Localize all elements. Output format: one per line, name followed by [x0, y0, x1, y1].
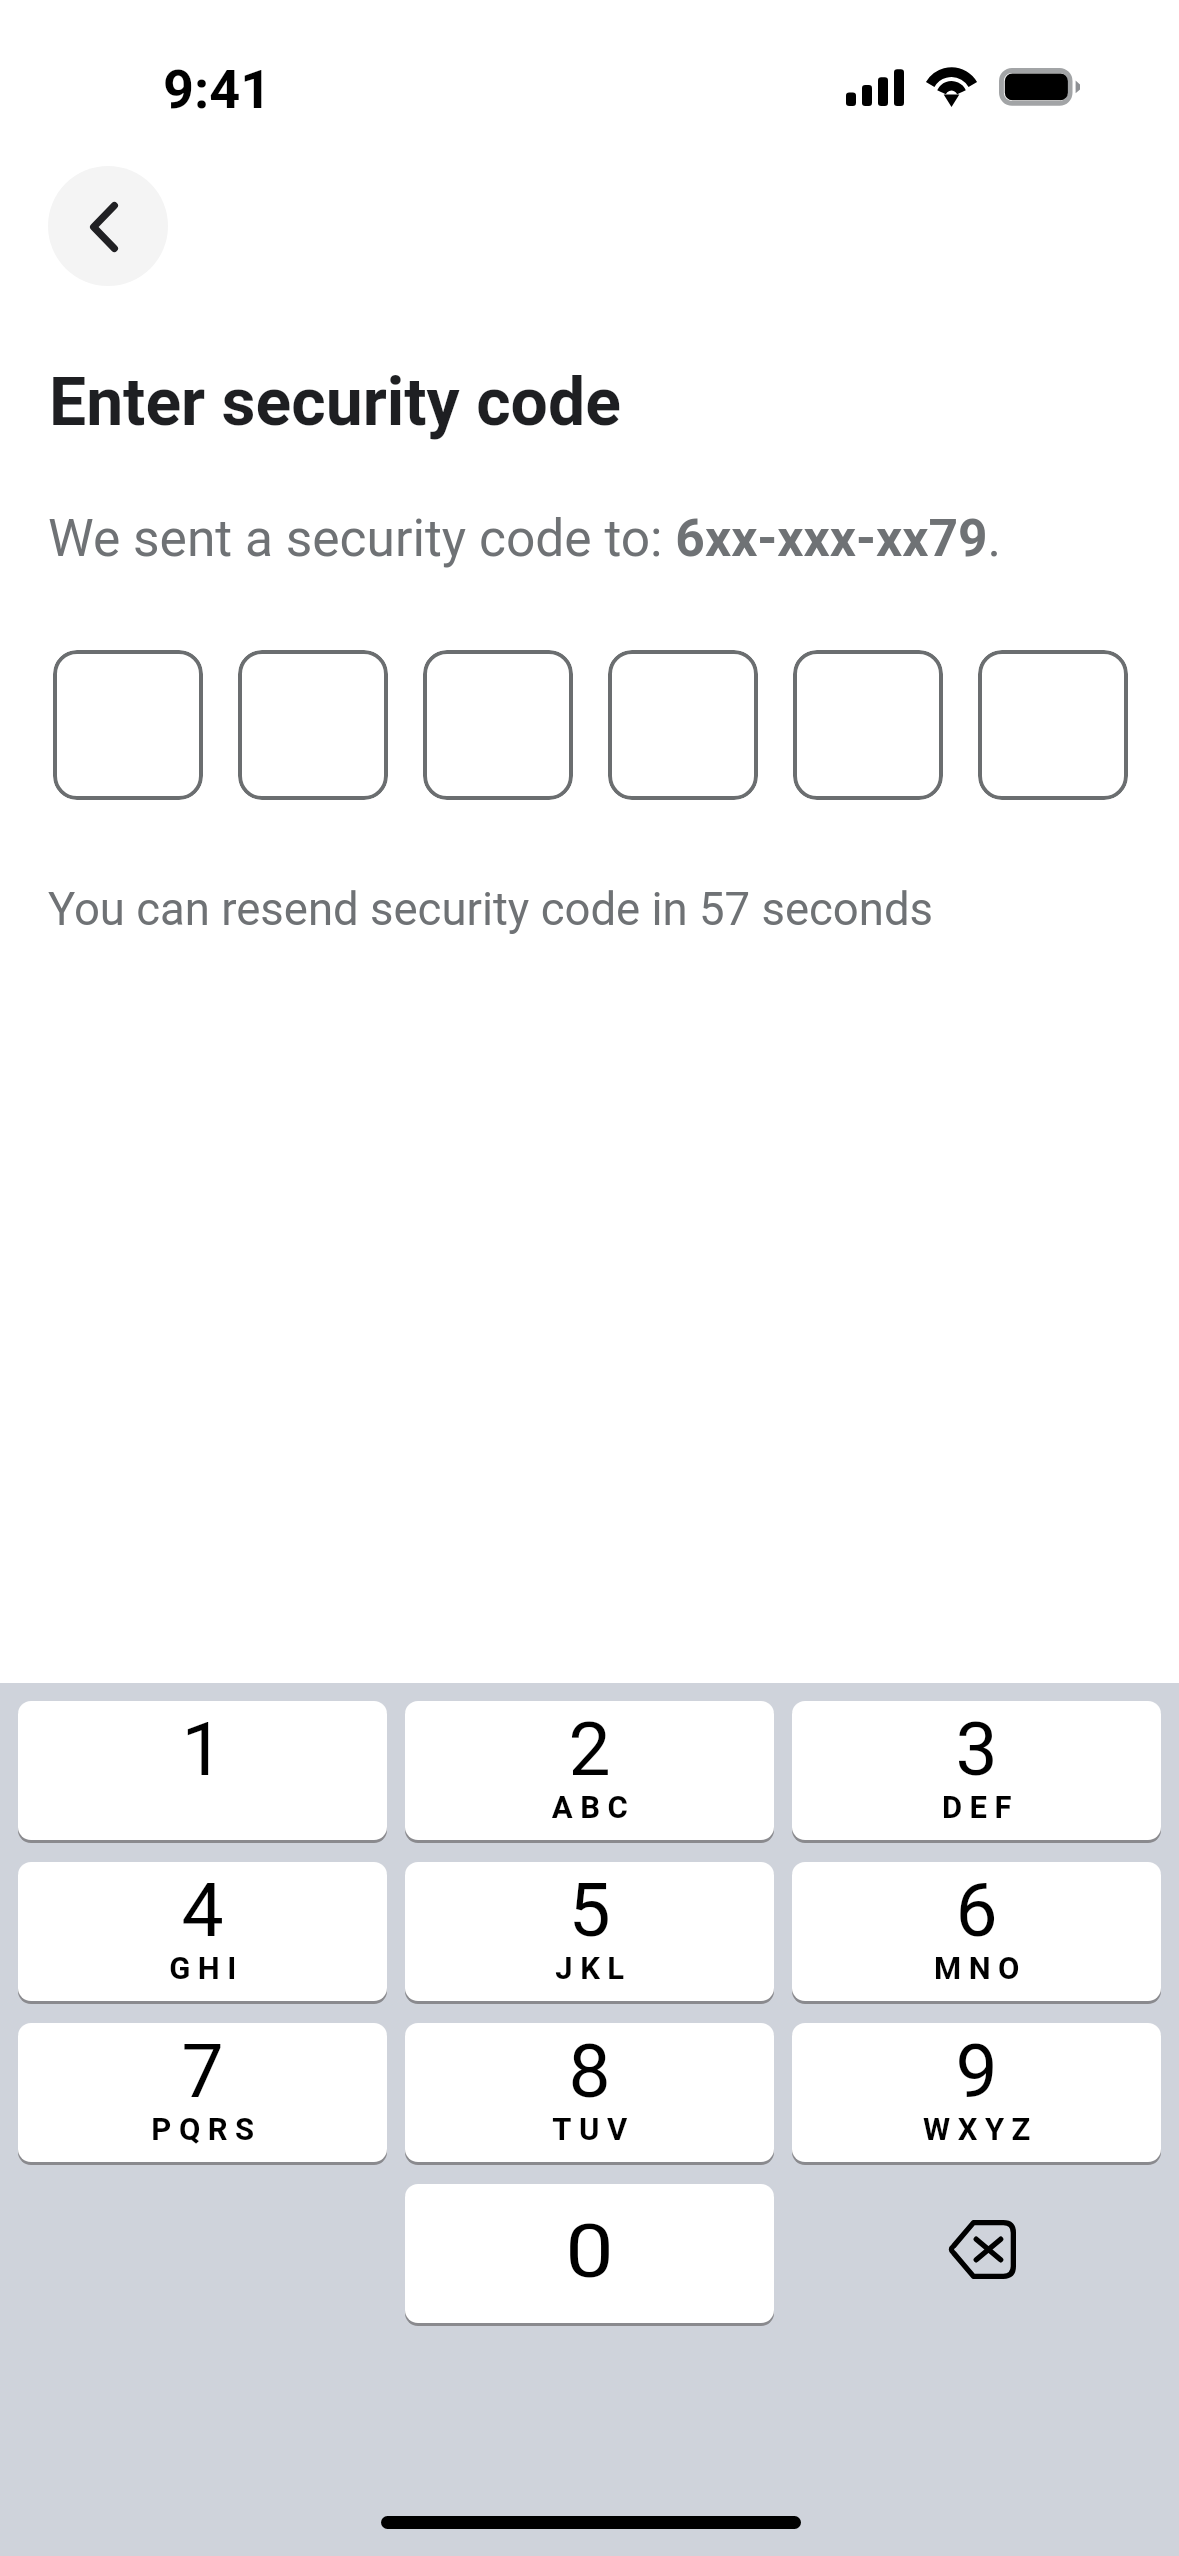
- button[interactable]: [53, 650, 203, 800]
- button[interactable]: 5: [405, 1862, 774, 2001]
- button[interactable]: 4: [18, 1862, 387, 2001]
- staticText: GHI: [22, 1950, 387, 1986]
- staticText: ABC: [409, 1789, 774, 1825]
- button[interactable]: 8: [405, 2023, 774, 2162]
- staticText: 2: [405, 1705, 774, 1793]
- button[interactable]: Back: [48, 166, 168, 286]
- staticText: 9: [792, 2027, 1161, 2115]
- button[interactable]: Backspace: [792, 2184, 1161, 2323]
- button[interactable]: [978, 650, 1128, 800]
- staticText: We sent a security code to: 6xx-xxx-xx79…: [48, 508, 1002, 568]
- button[interactable]: 6: [792, 1862, 1161, 2001]
- button[interactable]: [423, 650, 573, 800]
- staticText: MNO: [796, 1950, 1161, 1986]
- button[interactable]: 3: [792, 1701, 1161, 1840]
- button[interactable]: [238, 650, 388, 800]
- staticText: 3: [792, 1705, 1161, 1793]
- staticText: 7: [18, 2027, 387, 2115]
- button[interactable]: 7: [18, 2023, 387, 2162]
- staticText: 8: [405, 2027, 774, 2115]
- staticText: WXYZ: [796, 2111, 1161, 2147]
- button[interactable]: 2: [405, 1701, 774, 1840]
- staticText: JKL: [409, 1950, 774, 1986]
- staticText: 5: [405, 1866, 774, 1954]
- staticText: 6: [792, 1866, 1161, 1954]
- button[interactable]: 1: [18, 1701, 387, 1840]
- staticText: 9:41: [163, 58, 272, 121]
- staticText: DEF: [796, 1789, 1161, 1825]
- staticText: Enter security code: [49, 364, 621, 441]
- button[interactable]: 9: [792, 2023, 1161, 2162]
- staticText: You can resend security code in 57 secon…: [48, 883, 934, 936]
- staticText: TUV: [409, 2111, 774, 2147]
- button[interactable]: [793, 650, 943, 800]
- button[interactable]: [608, 650, 758, 800]
- staticText: 1: [18, 1705, 387, 1793]
- staticText: PQRS: [22, 2111, 387, 2147]
- button[interactable]: 0: [405, 2184, 774, 2323]
- staticText: 4: [18, 1866, 387, 1954]
- staticText: 0: [405, 2207, 774, 2295]
